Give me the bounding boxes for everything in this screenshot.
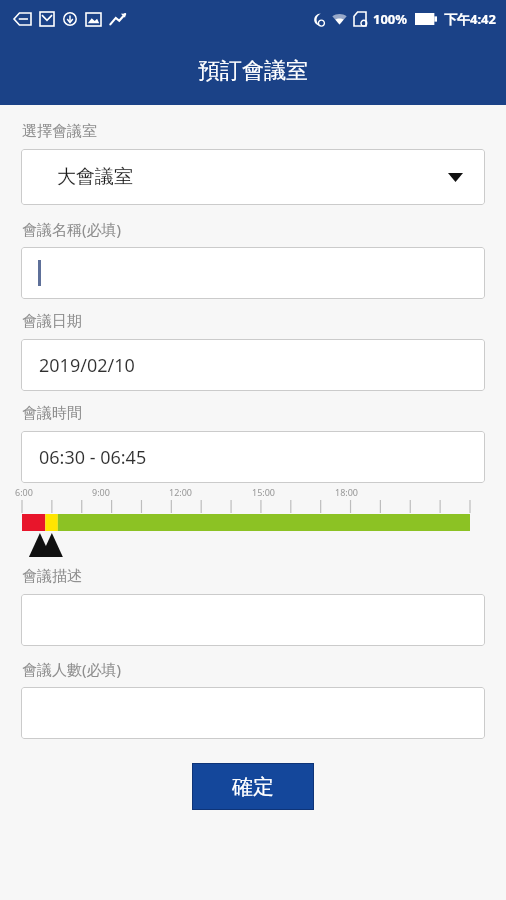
staticText: 2019/02/10 [39,353,135,378]
staticText: 12:00 [169,486,193,498]
staticText: 100% [373,10,408,28]
staticText: 選擇會議室 [22,122,97,141]
staticText: 會議日期 [22,312,82,331]
staticText: 6:00 [15,486,33,498]
staticText: 會議時間 [22,404,82,423]
button[interactable]: 06:30 - 06:45 [21,431,485,483]
staticText: 會議名稱(必填) [22,219,122,239]
button[interactable] [21,687,485,739]
staticText: 15:00 [252,486,276,498]
staticText: 會議人數(必填) [22,659,122,679]
staticText: 下午4:42 [444,10,496,28]
button[interactable]: 2019/02/10 [21,339,485,391]
button[interactable] [21,594,485,646]
staticText: 會議描述 [22,567,82,586]
staticText: 9:00 [92,486,110,498]
button[interactable]: 大會議室 [21,149,485,205]
staticText: 06:30 - 06:45 [39,445,147,470]
staticText: 大會議室 [57,165,133,189]
other: 展開選單 [448,173,463,182]
button[interactable] [21,247,485,299]
button[interactable]: 確定 [192,763,314,810]
staticText: 18:00 [335,486,359,498]
staticText: 確定 [232,774,274,800]
staticText: 預訂會議室 [198,57,308,85]
